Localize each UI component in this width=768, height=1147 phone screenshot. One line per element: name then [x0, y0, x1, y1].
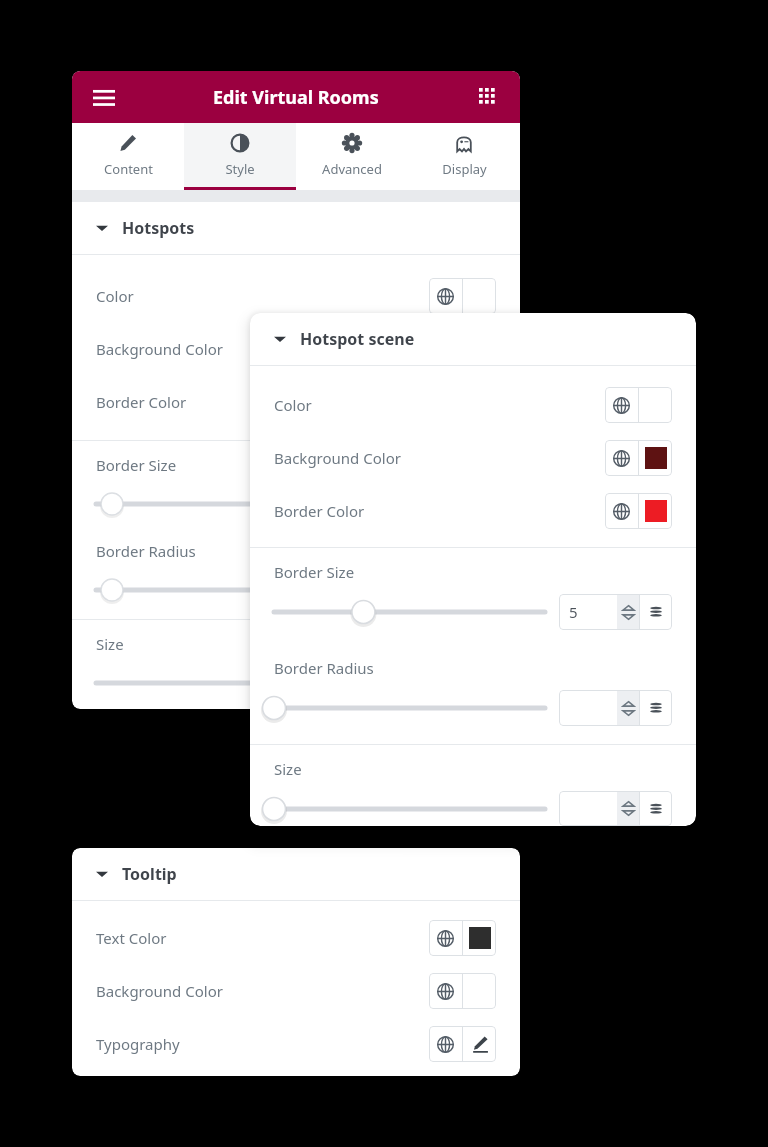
button[interactable]: Size [72, 620, 520, 706]
button[interactable]: Hotspots [72, 202, 520, 254]
staticText: Background Color [96, 981, 223, 1001]
staticText: Text Color [96, 928, 167, 948]
button[interactable]: Border Color [250, 484, 696, 537]
button[interactable]: Hotspot scene [250, 313, 696, 365]
button[interactable]: Units [640, 791, 672, 826]
staticText: Display [442, 160, 487, 178]
button[interactable]: Text Color [72, 911, 520, 964]
button[interactable]: Content [72, 123, 184, 190]
button[interactable]: Border Color [72, 375, 520, 428]
staticText: Hotspot scene [300, 328, 415, 350]
button[interactable]: Border Radius [72, 527, 520, 613]
staticText: Content [104, 160, 153, 178]
button[interactable]: Advanced [296, 123, 408, 190]
staticText: Edit Virtual Rooms [213, 85, 379, 110]
button[interactable]: Stepper [559, 690, 639, 726]
other: Stepper [617, 791, 639, 826]
staticText: Border Radius [274, 658, 374, 678]
button[interactable]: Border Radius [250, 644, 696, 740]
staticText: Border Radius [96, 541, 196, 561]
other: Stepper [617, 690, 639, 726]
staticText: Typography [96, 1034, 180, 1054]
staticText: Border Size [96, 455, 177, 475]
button[interactable]: Display [408, 123, 520, 190]
staticText: Color [96, 286, 134, 306]
button[interactable]: Units [640, 594, 672, 630]
staticText: Border Color [96, 392, 187, 412]
button[interactable]: Units [640, 690, 672, 726]
button[interactable]: Tooltip [72, 848, 520, 900]
button[interactable]: Border Size [72, 441, 520, 527]
button[interactable]: Background Color [72, 964, 520, 1017]
other: Stepper [617, 594, 639, 630]
button[interactable]: Typography [72, 1017, 520, 1070]
staticText: Tooltip [122, 863, 177, 885]
staticText: Size [96, 634, 124, 654]
staticText: Style [225, 160, 255, 178]
button[interactable]: Stepper [559, 791, 639, 826]
button[interactable]: Background Color [250, 431, 696, 484]
staticText: Border Size [274, 562, 355, 582]
button[interactable]: Style [184, 123, 296, 190]
button[interactable]: Background Color [72, 322, 520, 375]
button[interactable]: Color [250, 378, 696, 431]
button[interactable]: Color [72, 269, 520, 322]
staticText: 5 [569, 602, 578, 622]
staticText: Color [274, 395, 312, 415]
button[interactable]: Border Size [250, 548, 696, 644]
staticText: Hotspots [122, 217, 195, 239]
button[interactable]: Apps grid [466, 75, 510, 119]
button[interactable]: Menu [82, 75, 126, 119]
button[interactable]: 5 [559, 594, 639, 630]
staticText: Background Color [96, 339, 223, 359]
button[interactable]: Size [250, 745, 696, 826]
staticText: Border Color [274, 501, 365, 521]
staticText: Advanced [322, 160, 382, 178]
staticText: Background Color [274, 448, 401, 468]
staticText: Size [274, 759, 302, 779]
